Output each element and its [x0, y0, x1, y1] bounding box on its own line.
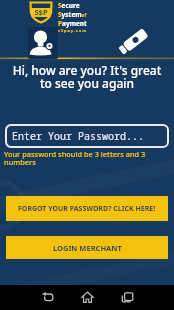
button[interactable] — [27, 285, 67, 310]
staticText: Hi, how are you? It's great to see you a… — [0, 62, 174, 92]
staticText: LOGIN MERCHANT — [53, 243, 122, 253]
button[interactable]: Enter Your Password... — [5, 124, 169, 148]
staticText: s$pay.com — [58, 28, 88, 33]
button[interactable] — [114, 27, 156, 55]
staticText: Secure — [58, 1, 80, 10]
staticText: Payment — [58, 19, 87, 28]
button[interactable]: LOGIN MERCHANT — [6, 236, 168, 259]
button[interactable] — [67, 285, 107, 310]
staticText: Enter Your Password... — [12, 129, 144, 143]
staticText: Your password should be 3 letters and 3 … — [4, 149, 146, 167]
staticText: FORGOT YOUR PASSWORD? CLICK HERE! — [18, 204, 156, 214]
staticText: S$P — [28, 7, 54, 17]
button[interactable] — [107, 285, 147, 310]
staticText: Systemof — [58, 10, 87, 19]
button[interactable]: FORGOT YOUR PASSWORD? CLICK HERE! — [6, 196, 168, 221]
button[interactable] — [28, 27, 58, 59]
